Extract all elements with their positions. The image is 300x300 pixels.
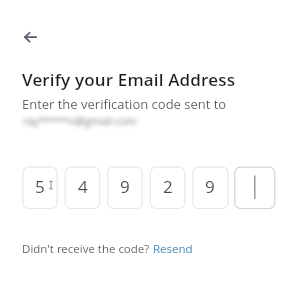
button[interactable]: Verification code digit 3: [107, 167, 142, 209]
button[interactable]: Verification code digit 1: [22, 167, 57, 209]
button[interactable]: Verification code digit 6: [234, 167, 275, 209]
staticText: Resend: [153, 241, 193, 257]
staticText: ray*****n@gmail.com: [23, 113, 137, 128]
button[interactable]: Verification code digit 2: [65, 167, 100, 209]
staticText: 9: [120, 175, 130, 198]
button[interactable]: Verification code digit 4: [150, 167, 185, 209]
staticText: 4: [78, 175, 88, 198]
staticText: Enter the verification code sent to: [22, 95, 227, 113]
button[interactable]: Resend: [153, 241, 193, 257]
staticText: Verify your Email Address: [22, 68, 236, 91]
button[interactable]: Verification code digit 5: [192, 167, 228, 209]
staticText: 9: [205, 175, 215, 198]
button[interactable]: Back: [14, 21, 46, 53]
staticText: Didn't receive the code?: [22, 241, 153, 257]
staticText: 5: [35, 175, 45, 198]
staticText: 2: [163, 175, 173, 198]
